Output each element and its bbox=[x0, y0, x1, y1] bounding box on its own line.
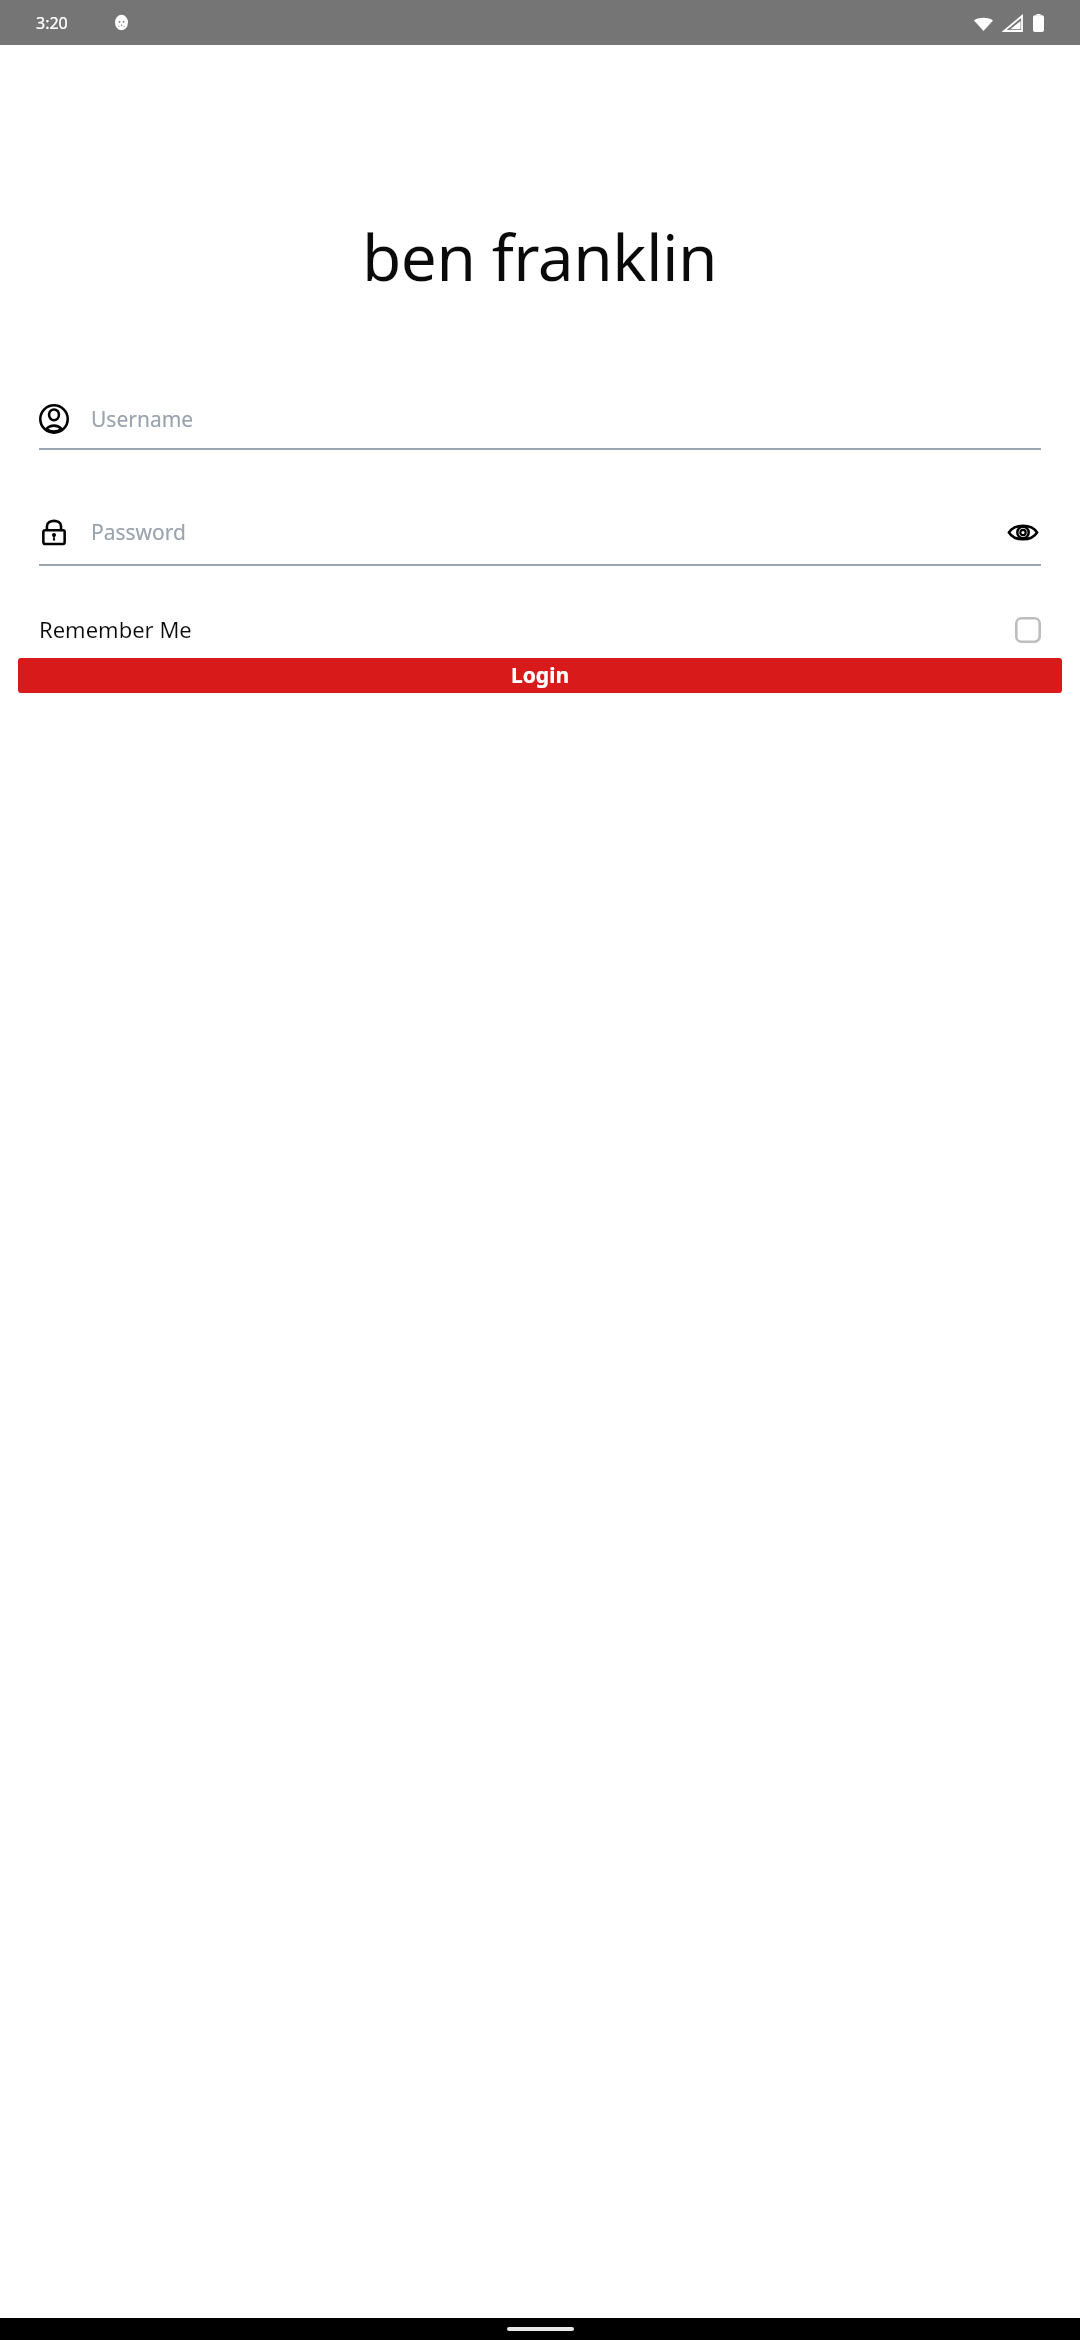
button[interactable]: Password bbox=[39, 514, 1041, 566]
button[interactable]: Show password bbox=[1005, 514, 1041, 550]
other: Remember Me checkbox bbox=[1015, 617, 1041, 643]
button[interactable]: Login bbox=[18, 658, 1062, 693]
staticText: Remember Me bbox=[39, 614, 1015, 644]
staticText: Username bbox=[91, 405, 194, 434]
staticText: Password bbox=[91, 518, 1005, 547]
staticText: ben franklin bbox=[362, 213, 718, 300]
button[interactable]: Username bbox=[39, 404, 1041, 450]
staticText: Login bbox=[511, 661, 570, 690]
button[interactable]: Remember Me bbox=[39, 614, 1041, 644]
staticText: 3:20 bbox=[36, 12, 68, 34]
